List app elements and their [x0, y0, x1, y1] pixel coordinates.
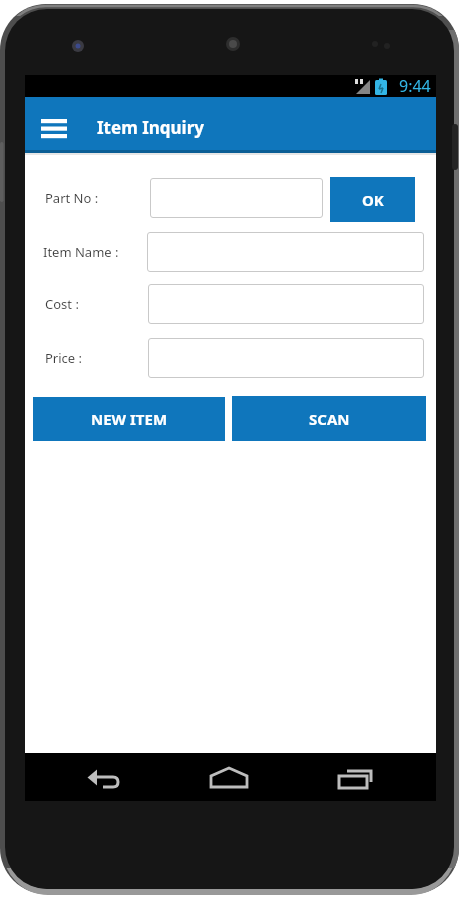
staticText: Item Name : [43, 243, 119, 261]
button[interactable] [65, 753, 141, 801]
staticText: OK [362, 190, 384, 210]
staticText: SCAN [309, 409, 350, 429]
button[interactable] [150, 178, 323, 218]
button[interactable] [148, 284, 424, 324]
button[interactable] [148, 338, 424, 378]
button[interactable] [35, 110, 79, 142]
button[interactable] [315, 753, 391, 801]
button[interactable] [147, 232, 424, 272]
staticText: Item Inquiry [97, 116, 204, 139]
staticText: Price : [45, 349, 83, 367]
staticText: NEW ITEM [91, 409, 168, 429]
staticText: Part No : [45, 189, 99, 207]
staticText: Cost : [45, 295, 79, 313]
button[interactable] [191, 753, 267, 801]
button[interactable]: OK [330, 177, 415, 222]
button[interactable]: SCAN [232, 396, 426, 441]
button[interactable]: NEW ITEM [33, 397, 225, 441]
staticText: 9:44 [399, 75, 431, 97]
